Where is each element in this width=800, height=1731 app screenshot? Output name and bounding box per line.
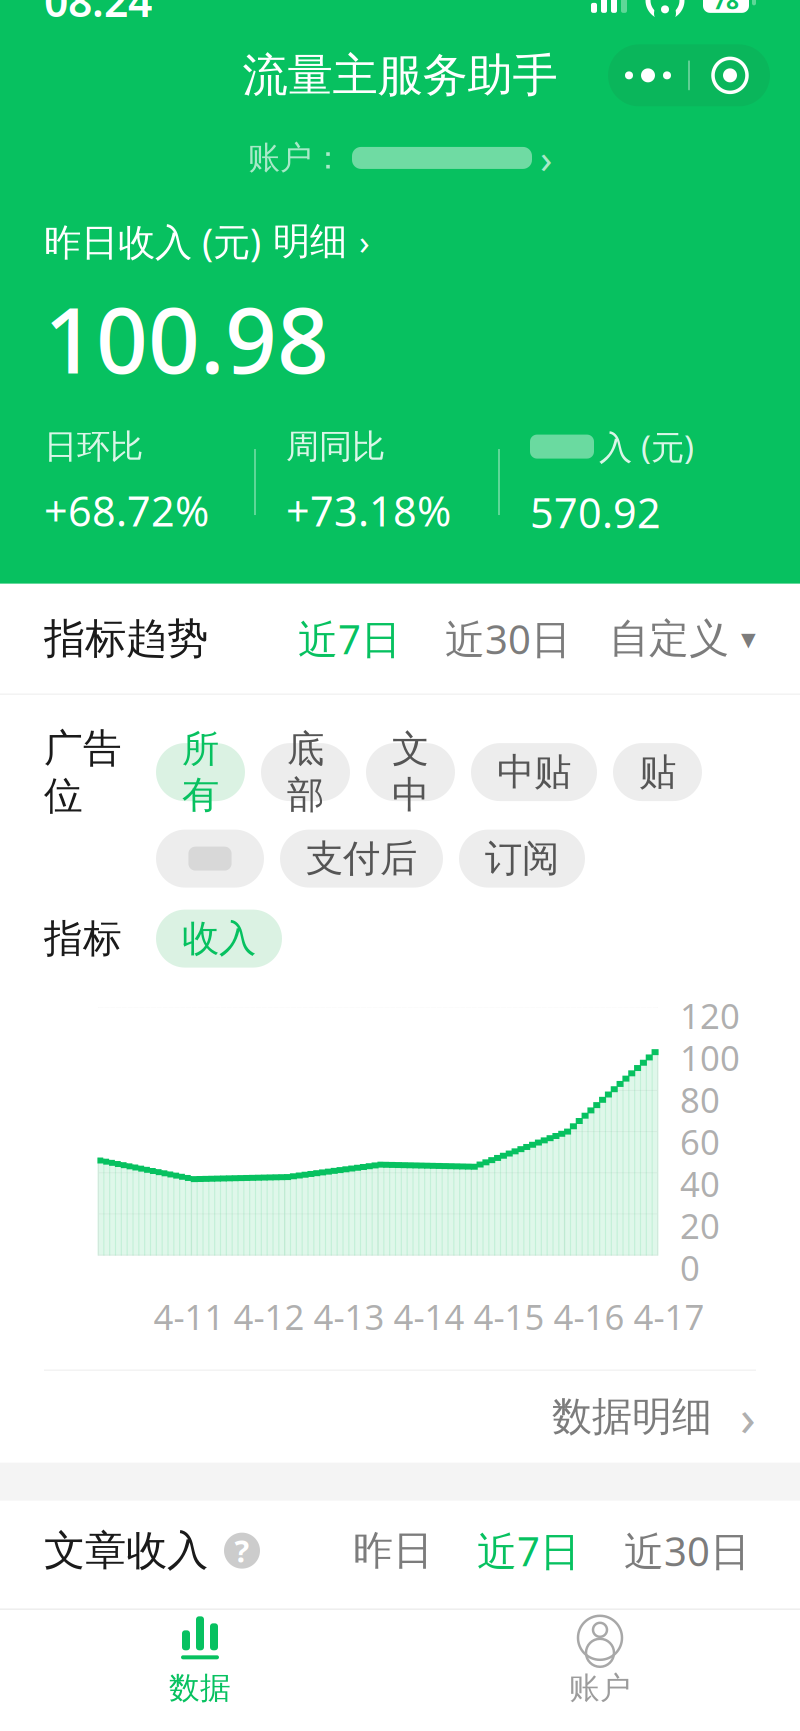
button[interactable]: 近7日	[471, 1516, 586, 1585]
staticText: ▾	[741, 622, 756, 655]
button[interactable]: 近30日	[618, 1516, 756, 1585]
staticText: 文中	[392, 726, 429, 818]
staticText: 昨日收入 (元)	[44, 216, 261, 266]
button[interactable]: 底部	[261, 743, 350, 801]
staticText: 100.98	[44, 278, 329, 398]
staticText: 所有	[182, 726, 219, 818]
staticText: 文章收入	[44, 1525, 208, 1576]
staticText: 自定义	[609, 614, 729, 663]
staticText: 底部	[287, 726, 324, 818]
staticText: 近30日	[624, 1524, 750, 1577]
staticText: 近7日	[298, 612, 401, 665]
staticText: 08:24	[44, 0, 152, 29]
button[interactable]: 支付后	[280, 830, 443, 888]
staticText: ›	[540, 131, 552, 184]
staticText: 4-13	[313, 1294, 384, 1340]
staticText: 78	[713, 0, 739, 15]
staticText: 中贴	[497, 749, 571, 795]
staticText: ?	[234, 1530, 249, 1571]
button[interactable]: Account	[248, 125, 552, 190]
button[interactable]: 近7日	[292, 604, 407, 673]
staticText: 近7日	[477, 1524, 580, 1577]
staticText: 20	[680, 1203, 720, 1249]
button[interactable]: 账户	[400, 1610, 800, 1714]
button[interactable]: 近30日	[439, 604, 577, 673]
staticText: 周同比	[286, 426, 385, 467]
button[interactable]: 文中	[366, 743, 455, 801]
staticText: 120	[680, 993, 740, 1039]
staticText: +68.72%	[44, 483, 209, 538]
staticText: 数据	[169, 1669, 231, 1707]
button[interactable]: 所有	[156, 743, 245, 801]
staticText: 0	[680, 1245, 700, 1291]
staticText: 昨日	[353, 1526, 433, 1575]
staticText: 40	[680, 1161, 720, 1207]
staticText: 数据明细	[552, 1392, 712, 1441]
staticText: 支付后	[306, 836, 417, 882]
button[interactable]: 昨日	[347, 1518, 439, 1583]
staticText: 流量主服务助手	[242, 47, 557, 103]
staticText: 4-11	[153, 1294, 224, 1340]
button[interactable]: Help	[224, 1530, 260, 1571]
staticText: 账户：	[248, 138, 344, 178]
staticText: 100	[680, 1035, 740, 1081]
staticText: 60	[680, 1119, 720, 1165]
staticText: 订阅	[485, 836, 559, 882]
button[interactable]: 数据	[0, 1610, 400, 1714]
staticText: 账户	[569, 1669, 631, 1707]
staticText: 4-12	[233, 1294, 304, 1340]
staticText: ›	[740, 1383, 756, 1450]
button[interactable]: Ad slot filter	[156, 830, 264, 888]
button[interactable]: 自定义	[609, 606, 756, 671]
staticText: +73.18%	[286, 483, 451, 538]
staticText: 贴	[639, 749, 676, 795]
staticText: 4-17	[633, 1294, 704, 1340]
staticText: 收入	[182, 916, 256, 962]
staticText: 明细	[273, 218, 347, 264]
staticText: ›	[359, 218, 370, 264]
staticText: 4-16	[553, 1294, 624, 1340]
staticText: 80	[680, 1077, 720, 1123]
staticText: 广告位	[44, 725, 122, 820]
staticText: 570.92	[530, 485, 661, 540]
staticText: 日环比	[44, 426, 143, 467]
staticText: 4-15	[473, 1294, 544, 1340]
button[interactable]: 订阅	[459, 830, 585, 888]
staticText: 4-14	[393, 1294, 464, 1340]
staticText: 指标趋势	[44, 613, 208, 664]
button[interactable]: More	[608, 44, 770, 106]
button[interactable]: 贴	[613, 743, 702, 801]
button[interactable]: 昨日收入 (元)	[44, 216, 756, 266]
staticText: 近30日	[445, 612, 571, 665]
staticText: 入 (元)	[599, 424, 694, 469]
button[interactable]: 中贴	[471, 743, 597, 801]
button[interactable]: 数据明细	[0, 1371, 800, 1463]
button[interactable]: 收入	[156, 910, 282, 968]
staticText: 指标	[44, 915, 122, 962]
